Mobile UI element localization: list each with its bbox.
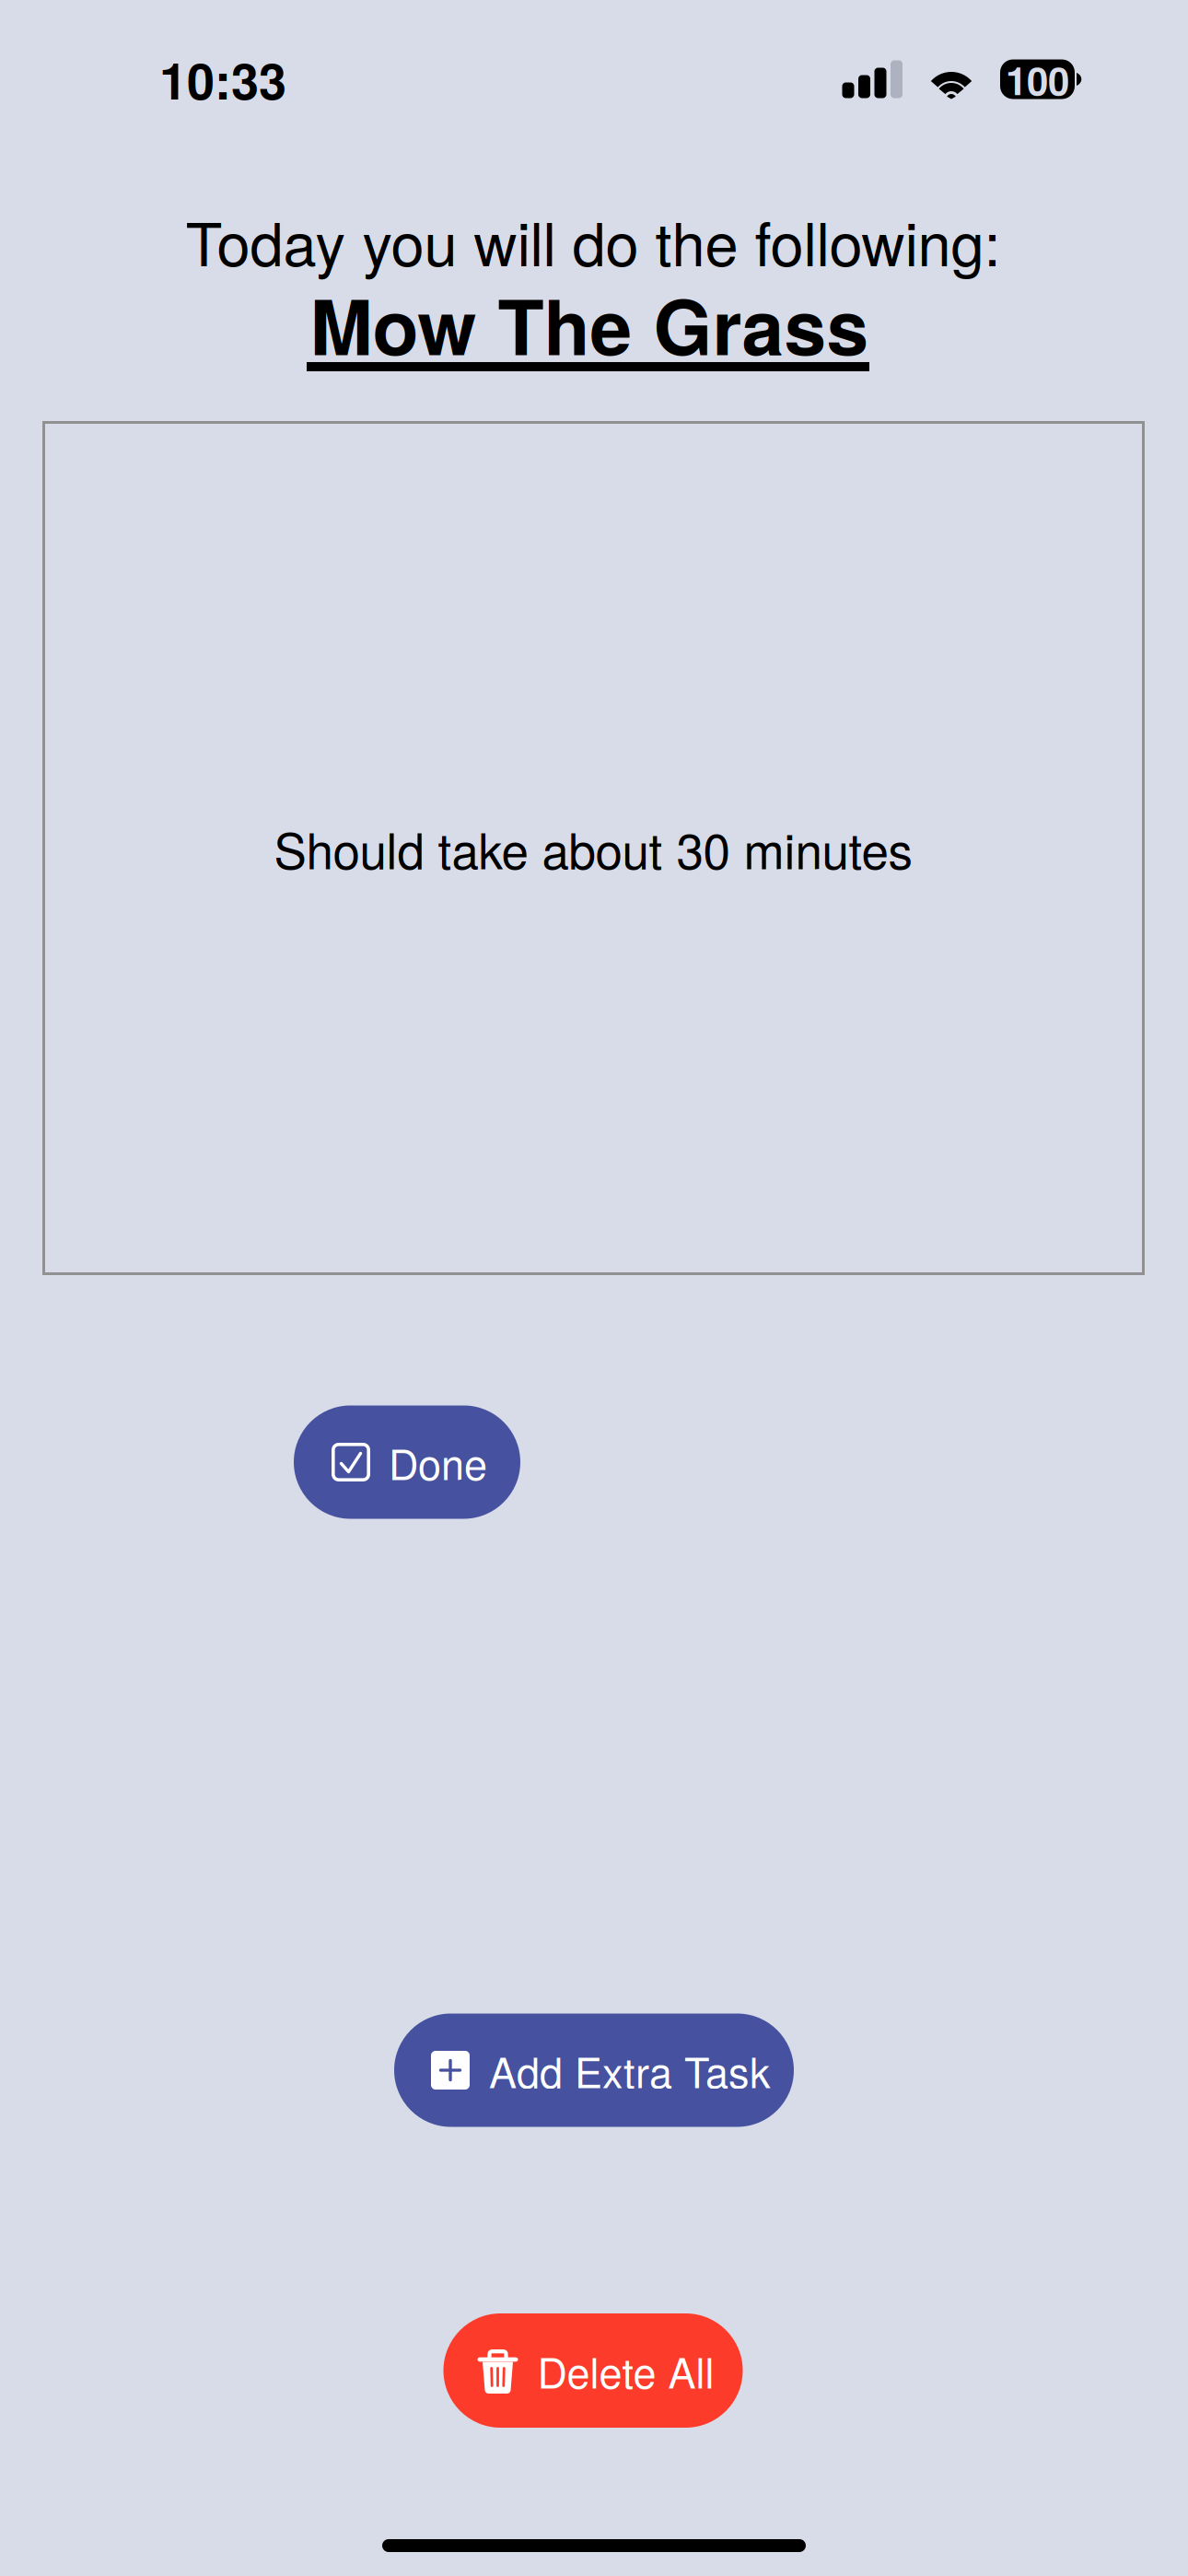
staticText: Done	[389, 1432, 487, 1492]
staticText: Today you will do the following:	[186, 198, 1001, 283]
button[interactable]: Add Extra Task	[394, 2014, 794, 2127]
staticText: 100	[1006, 52, 1069, 107]
staticText: Mow The Grass	[310, 270, 869, 378]
staticText: Add Extra Task	[489, 2041, 771, 2100]
staticText: Should take about 30 minutes	[274, 813, 913, 883]
staticText: Delete All	[537, 2341, 714, 2400]
staticText: 10:33	[159, 44, 286, 115]
button[interactable]: Done	[294, 1405, 520, 1519]
button[interactable]: Delete All	[443, 2313, 743, 2428]
